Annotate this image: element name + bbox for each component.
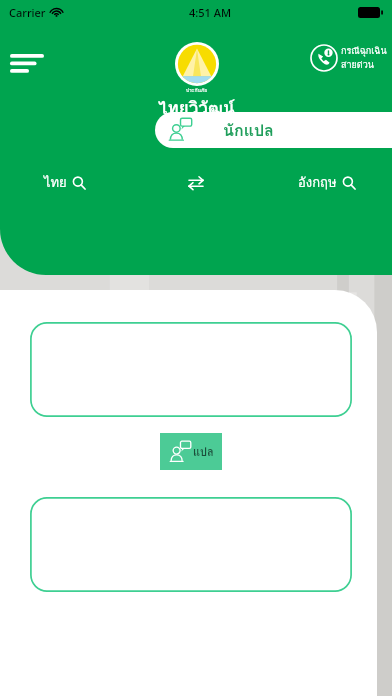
staticText: อังกฤษ: [298, 172, 337, 193]
staticText: 4:51 AM: [189, 5, 232, 20]
button[interactable]: ไทย: [0, 172, 130, 193]
other: Emergency call: [310, 44, 338, 72]
staticText: นักแปล: [223, 118, 274, 143]
staticText: กรณีฉุกเฉิน: [341, 44, 387, 58]
button[interactable]: ประกันภัย: [158, 42, 235, 121]
button[interactable]: [30, 497, 352, 592]
button[interactable]: [30, 322, 352, 417]
button[interactable]: แปล: [160, 433, 222, 470]
button[interactable]: Emergency call: [310, 44, 387, 72]
staticText: ไทย: [44, 172, 67, 193]
staticText: ไทยวิวัฒน์: [158, 94, 235, 121]
staticText: ประกันภัย: [186, 86, 208, 94]
button[interactable]: อังกฤษ: [261, 172, 392, 193]
staticText: แปล: [193, 443, 214, 460]
staticText: สายด่วน: [341, 58, 374, 72]
button[interactable]: Swap languages: [130, 175, 261, 191]
button[interactable]: นักแปล: [155, 112, 392, 148]
button[interactable]: Menu: [10, 50, 44, 74]
staticText: Carrier: [9, 5, 46, 20]
